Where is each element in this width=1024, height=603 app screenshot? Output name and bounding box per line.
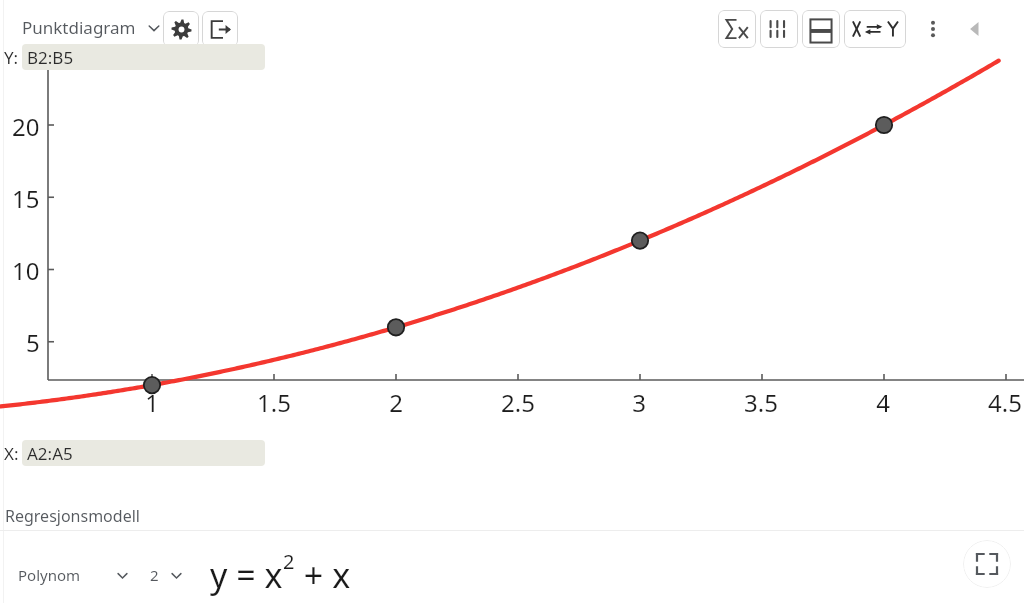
staticText: 4	[876, 386, 890, 419]
staticText: y = x	[210, 552, 283, 598]
staticText: Regresjonsmodell	[5, 505, 140, 527]
staticText: A2:A5	[27, 442, 73, 465]
staticText: 3	[632, 386, 646, 419]
staticText: 15	[12, 182, 40, 215]
staticText: 1	[145, 386, 159, 419]
button[interactable]: A2:A5	[22, 440, 265, 466]
staticText: 1.5	[257, 386, 291, 419]
staticText: 4.5	[988, 386, 1022, 419]
staticText: 2	[389, 386, 403, 419]
button[interactable]: Bytt X og Y	[844, 10, 906, 48]
staticText: 10	[12, 254, 40, 287]
button[interactable]: Punktdiagram	[18, 12, 164, 43]
staticText: 2	[283, 548, 295, 575]
button[interactable]: 2	[146, 561, 186, 589]
button[interactable]: Eksporter	[202, 11, 238, 47]
staticText: 5	[26, 326, 40, 359]
button[interactable]: Innstillinger	[163, 11, 199, 47]
button[interactable]: Polynom	[14, 561, 132, 589]
button[interactable]: Fullskjerm	[963, 540, 1011, 588]
button[interactable]: Sum	[718, 10, 756, 48]
staticText: 3.5	[744, 386, 778, 419]
staticText: 2.5	[501, 386, 535, 419]
button[interactable]: Tabell	[760, 10, 798, 48]
staticText: Punktdiagram	[22, 16, 136, 39]
staticText: X:	[4, 442, 19, 465]
staticText: 20	[12, 110, 40, 143]
button[interactable]: Skjul panel	[960, 14, 990, 44]
staticText: + x	[295, 552, 351, 598]
button[interactable]: Mer	[916, 12, 950, 46]
staticText: 2	[150, 565, 159, 585]
button[interactable]: Todelt visning	[802, 10, 840, 48]
button[interactable]: B2:B5	[22, 44, 265, 70]
staticText: Polynom	[18, 565, 81, 585]
staticText: B2:B5	[27, 46, 74, 69]
staticText: Y:	[4, 46, 19, 69]
